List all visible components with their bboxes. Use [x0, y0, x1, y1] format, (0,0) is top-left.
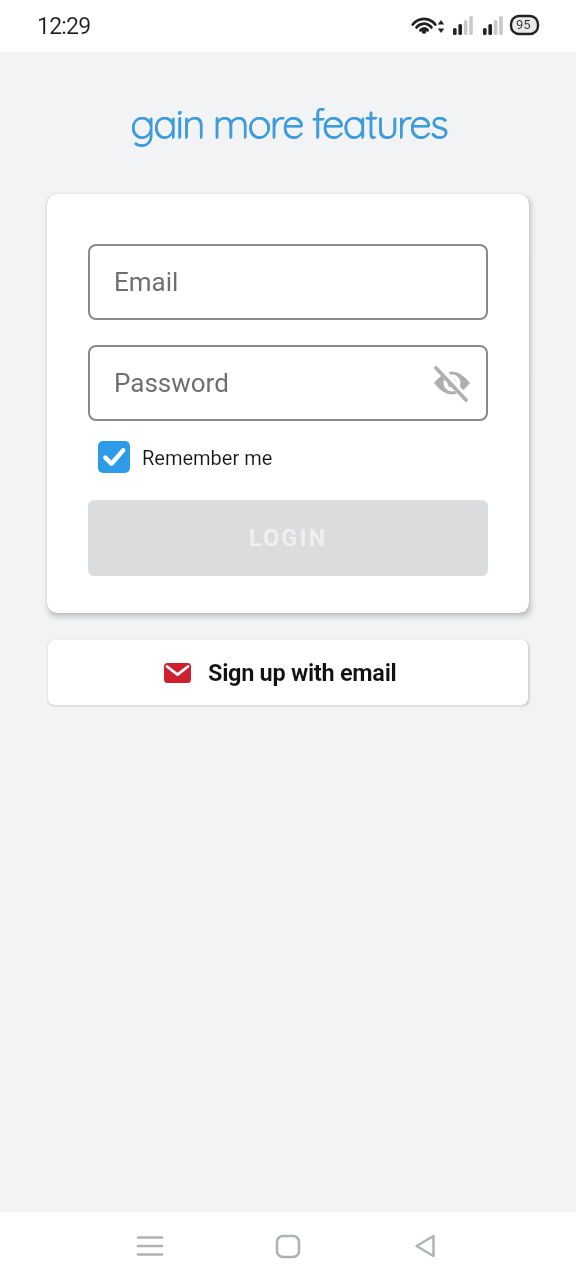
staticText: 95 — [516, 17, 531, 32]
button[interactable] — [403, 1223, 449, 1269]
button[interactable]: Remember me — [98, 441, 273, 473]
button[interactable] — [265, 1223, 311, 1269]
staticText: Remember me — [142, 446, 273, 469]
staticText: Password — [114, 368, 229, 398]
staticText: gain more features — [130, 98, 447, 148]
staticText: 12:29 — [37, 13, 91, 40]
staticText: gain more features — [130, 99, 447, 149]
button[interactable]: Email — [88, 244, 488, 320]
button[interactable]: Password — [88, 345, 488, 421]
staticText: gain more features — [131, 98, 448, 148]
staticText: Sign up with email — [208, 659, 397, 687]
staticText: LOGIN — [249, 525, 328, 552]
button[interactable] — [127, 1223, 173, 1269]
staticText: Email — [114, 267, 179, 297]
button[interactable]: Sign up with email — [48, 640, 528, 705]
